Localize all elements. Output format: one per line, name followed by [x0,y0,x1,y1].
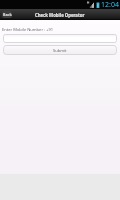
button[interactable]: Back [2,11,12,18]
staticText: Enter Mobile Number : +91 [2,27,54,33]
button[interactable]: Submit [3,45,117,55]
staticText: Back [3,12,12,17]
staticText: Check Mobile Operator [35,12,85,18]
staticText: 12:04 [101,0,119,9]
staticText: Submit [53,48,67,53]
button[interactable] [3,34,117,43]
